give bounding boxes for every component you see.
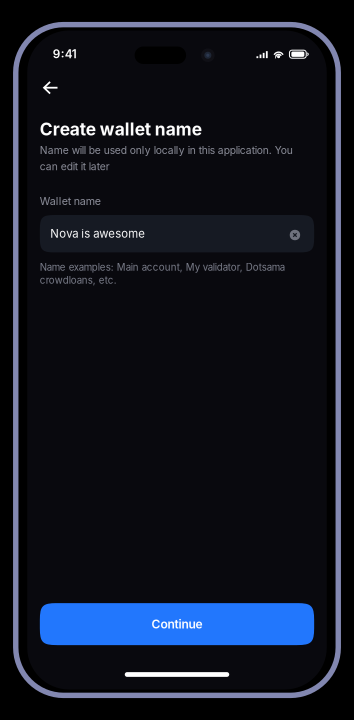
staticText: Name examples: Main account, My validato… [40,261,285,286]
staticText: Create wallet name [40,119,202,140]
staticText: Nova is awesome [50,227,145,241]
staticText: Continue [151,617,202,631]
button[interactable]: Back [36,73,66,103]
staticText: 9:41 [53,47,77,61]
button[interactable]: Continue [40,603,314,645]
staticText: Name will be used only locally in this a… [40,144,293,173]
staticText: Wallet name [40,195,101,207]
button[interactable]: Clear text [290,230,300,240]
